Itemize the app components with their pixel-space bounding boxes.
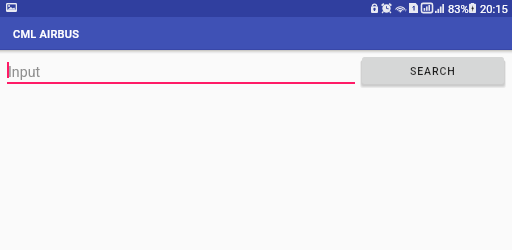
staticText: 20:15 xyxy=(480,3,508,16)
staticText: SEARCH xyxy=(410,65,456,77)
other: Battery charging xyxy=(469,3,476,13)
staticText: Input xyxy=(8,64,41,81)
other: Screenshot notification xyxy=(6,3,17,12)
other: Signal strength xyxy=(435,4,444,13)
button[interactable]: CML AIRBUS xyxy=(0,17,512,49)
other: Wi-Fi xyxy=(395,4,407,13)
button[interactable]: Input xyxy=(7,60,355,84)
other: Mobile data xyxy=(421,3,433,13)
staticText: CML AIRBUS xyxy=(13,28,80,41)
other: Screen lock xyxy=(371,4,378,13)
other: SIM 1 xyxy=(409,3,418,13)
staticText: 83% xyxy=(448,3,469,16)
other: Alarm set xyxy=(381,3,392,13)
button[interactable]: SEARCH xyxy=(362,57,504,84)
